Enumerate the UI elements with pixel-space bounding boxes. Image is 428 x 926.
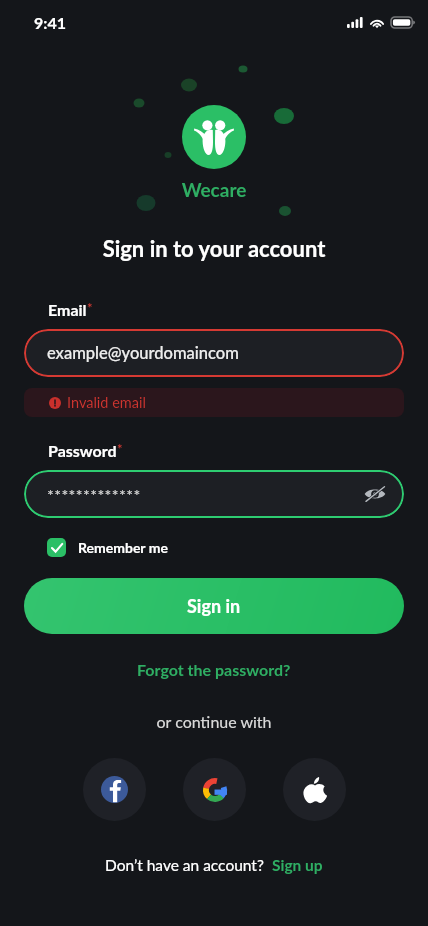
staticText: ************* xyxy=(47,485,362,504)
staticText: * xyxy=(87,300,93,316)
staticText: Sign in xyxy=(187,595,241,617)
staticText: Email xyxy=(48,300,87,319)
button[interactable]: Remember me xyxy=(47,538,168,557)
staticText: Sign in to your account xyxy=(0,235,428,261)
button[interactable]: Sign in with Google xyxy=(183,758,246,821)
staticText: * xyxy=(117,441,123,457)
button[interactable]: Forgot the password? xyxy=(133,656,295,683)
staticText: Password xyxy=(48,441,117,460)
staticText: 9:41 xyxy=(34,13,66,32)
button[interactable]: Sign in with Facebook xyxy=(83,758,146,821)
staticText: Don’t have an account? xyxy=(105,856,264,875)
staticText: or continue with xyxy=(0,712,428,731)
staticText: example@yourdomaincom xyxy=(47,343,239,363)
button[interactable]: ************* xyxy=(24,470,404,518)
button[interactable]: example@yourdomaincom xyxy=(24,329,404,377)
staticText: Wecare xyxy=(0,178,428,201)
button[interactable]: Sign up xyxy=(272,856,323,875)
button[interactable]: Sign in xyxy=(24,578,404,634)
button[interactable]: Sign in with Apple xyxy=(283,758,346,821)
staticText: Remember me xyxy=(78,539,168,556)
button[interactable]: Show password xyxy=(362,483,388,505)
staticText: Invalid email xyxy=(67,394,146,411)
